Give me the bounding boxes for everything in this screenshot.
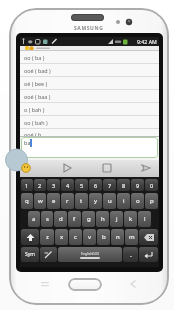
staticText: 3 xyxy=(52,182,56,189)
button[interactable]: a xyxy=(28,211,40,227)
button[interactable]: ooé ( baa ) xyxy=(20,90,159,103)
button[interactable]: t xyxy=(75,193,88,209)
staticText: ooé ( b xyxy=(24,131,42,136)
button[interactable]: b xyxy=(97,229,110,245)
button[interactable]: f xyxy=(68,211,81,227)
button[interactable]: 3 xyxy=(47,179,60,191)
staticText: b xyxy=(102,233,106,241)
button[interactable]: i xyxy=(117,193,130,209)
staticText: q xyxy=(25,197,29,205)
staticText: j xyxy=(116,215,118,223)
button[interactable]: 8 xyxy=(117,179,130,191)
staticText: Sym xyxy=(25,251,35,258)
staticText: m xyxy=(129,233,135,241)
staticText: r xyxy=(66,197,69,205)
button[interactable]: ba xyxy=(21,137,158,158)
button[interactable]: 5 xyxy=(75,179,88,191)
staticText: 1 xyxy=(25,182,29,189)
button[interactable]: oé ( bee ) xyxy=(20,77,159,90)
button[interactable]: n xyxy=(111,229,124,245)
button[interactable] xyxy=(21,229,39,245)
staticText: k xyxy=(129,215,133,223)
button[interactable]: q xyxy=(21,193,33,209)
button[interactable]: z xyxy=(40,229,54,245)
staticText: 0 xyxy=(150,182,154,189)
button[interactable]: 9 xyxy=(131,179,144,191)
staticText: o xyxy=(136,197,140,205)
button[interactable]: g xyxy=(82,211,95,227)
staticText: 9 xyxy=(136,182,140,189)
staticText: oo ( ba ) xyxy=(24,54,45,61)
staticText: 8 xyxy=(122,182,126,189)
staticText: i xyxy=(123,197,125,205)
button[interactable] xyxy=(20,159,54,177)
staticText: o ( bah ) xyxy=(24,106,45,113)
button[interactable] xyxy=(40,247,57,262)
button[interactable]: 2 xyxy=(34,179,46,191)
staticText: 6 xyxy=(94,182,98,189)
staticText: 2 xyxy=(38,182,42,189)
staticText: SAMSUNG xyxy=(74,25,104,32)
button[interactable]: j xyxy=(110,211,123,227)
staticText: l xyxy=(144,215,146,223)
button[interactable]: 1 xyxy=(21,179,33,191)
staticText: oo ( bah ) xyxy=(24,119,48,126)
button[interactable]: h xyxy=(96,211,109,227)
button[interactable]: y xyxy=(89,193,102,209)
button[interactable] xyxy=(54,159,89,177)
button[interactable] xyxy=(89,159,124,177)
button[interactable]: w xyxy=(34,193,46,209)
button[interactable]: 0 xyxy=(145,179,158,191)
button[interactable] xyxy=(139,229,158,245)
button[interactable] xyxy=(68,278,102,291)
staticText: h xyxy=(101,215,105,223)
button[interactable]: . xyxy=(123,247,138,262)
button[interactable]: Sym xyxy=(21,247,39,262)
button[interactable]: d xyxy=(54,211,67,227)
staticText: n xyxy=(116,233,120,241)
button[interactable]: r xyxy=(61,193,74,209)
button[interactable]: c xyxy=(69,229,82,245)
staticText: a xyxy=(32,215,36,223)
staticText: v xyxy=(88,233,92,241)
staticText: e xyxy=(52,197,56,205)
button[interactable]: o ( bah ) xyxy=(20,103,159,116)
staticText: x xyxy=(60,233,64,241)
button[interactable]: 6 xyxy=(89,179,102,191)
button[interactable]: 7 xyxy=(103,179,116,191)
staticText: . xyxy=(130,250,132,260)
button[interactable]: English(US) xyxy=(58,247,122,262)
button[interactable]: ooé ( bad ) xyxy=(20,64,159,77)
staticText: s xyxy=(46,215,49,223)
staticText: w xyxy=(38,197,43,205)
button[interactable]: s xyxy=(41,211,53,227)
staticText: f xyxy=(73,215,76,223)
button[interactable]: x xyxy=(55,229,68,245)
staticText: ba xyxy=(24,139,31,146)
button[interactable]: 4 xyxy=(61,179,74,191)
staticText: oé ( bee ) xyxy=(24,80,48,87)
staticText: t xyxy=(80,197,83,205)
button[interactable] xyxy=(139,247,158,262)
button[interactable]: o xyxy=(131,193,144,209)
button[interactable]: e xyxy=(47,193,60,209)
staticText: 7 xyxy=(108,182,112,189)
button[interactable]: oo ( ba ) xyxy=(20,51,159,64)
button[interactable]: l xyxy=(138,211,151,227)
staticText: ooé ( baa ) xyxy=(24,93,51,100)
staticText: c xyxy=(74,233,77,241)
staticText: ooé ( bad ) xyxy=(24,67,51,74)
button[interactable]: p xyxy=(145,193,158,209)
staticText: 4 xyxy=(66,182,70,189)
staticText: g xyxy=(87,215,91,223)
button[interactable]: v xyxy=(83,229,96,245)
button[interactable]: u xyxy=(103,193,116,209)
button[interactable] xyxy=(124,159,159,177)
button[interactable]: k xyxy=(124,211,137,227)
button[interactable]: oo ( bah ) xyxy=(20,116,159,129)
staticText: p xyxy=(150,197,154,205)
staticText: English(US) xyxy=(81,251,99,256)
staticText: 9:42 AM xyxy=(137,38,157,45)
staticText: 5 xyxy=(80,182,84,189)
button[interactable]: m xyxy=(125,229,138,245)
